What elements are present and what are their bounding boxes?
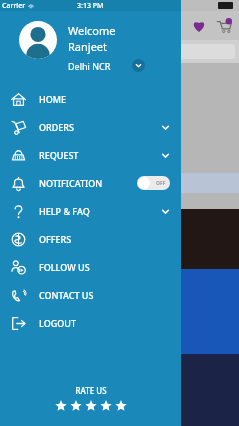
staticText: REQUEST: [39, 149, 161, 161]
button[interactable]: RATE US: [0, 385, 181, 426]
staticText: HOME: [39, 93, 170, 105]
staticText: Ranjeet: [68, 39, 108, 54]
button[interactable]: CONTACT US: [0, 281, 181, 309]
button[interactable]: Welcome: [19, 21, 181, 85]
staticText: Carrier: [2, 1, 26, 11]
staticText: ogle play: [2, 177, 41, 189]
staticText: Welcome: [68, 23, 116, 38]
staticText: 3:13 PM: [77, 1, 104, 11]
staticText: CONTACT US: [39, 289, 170, 301]
staticText: Delhi NCR: [68, 60, 111, 72]
staticText: LOGOUT: [39, 317, 170, 329]
staticText: OFFERS: [39, 233, 170, 245]
button[interactable]: Notification toggle: [137, 176, 170, 190]
button[interactable]: ORDERS: [0, 113, 181, 141]
button[interactable]: FOLLOW US: [0, 253, 181, 281]
staticText: NOTIFICATION: [39, 177, 137, 189]
staticText: ORDERS: [39, 121, 161, 133]
button[interactable]: Cart: [216, 18, 232, 34]
staticText: RATE US: [75, 385, 107, 396]
button[interactable]: NOTIFICATION: [0, 169, 181, 197]
staticText: FOLLOW US: [39, 261, 170, 273]
button[interactable]: Wishlist: [191, 18, 207, 34]
staticText: HELP & FAQ: [39, 205, 161, 217]
staticText: OFF: [156, 180, 166, 187]
button[interactable]: LOGOUT: [0, 309, 181, 337]
button[interactable]: REQUEST: [0, 141, 181, 169]
button[interactable]: OFFERS: [0, 225, 181, 253]
staticText: rative: [3, 329, 25, 340]
button[interactable]: HELP & FAQ: [0, 197, 181, 225]
button[interactable]: HOME: [0, 85, 181, 113]
button[interactable]: Change city: [132, 59, 145, 72]
